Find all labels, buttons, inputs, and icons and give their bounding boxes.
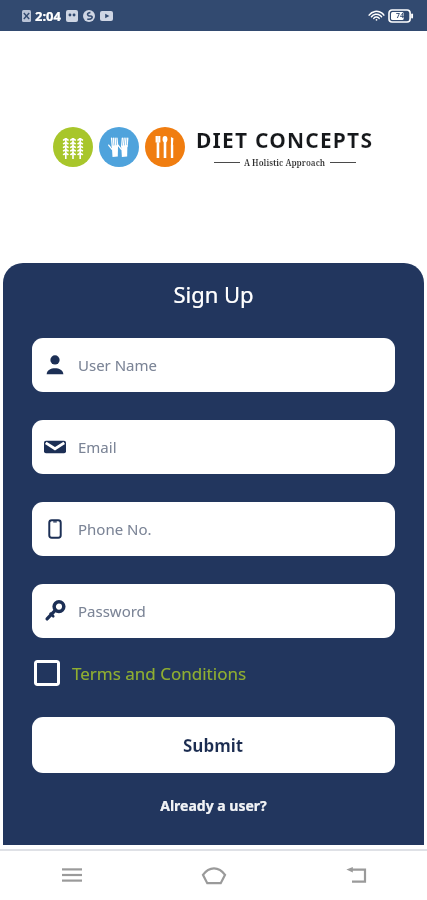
staticText: Submit [183,734,244,757]
button[interactable]: Submit [32,717,395,773]
button[interactable]: Phone No. [32,502,395,556]
staticText: User Name [78,355,158,375]
staticText: Terms and Conditions [72,662,247,685]
staticText: Sign Up [3,279,424,309]
button[interactable]: Back [285,850,427,900]
staticText: 74 [396,11,405,21]
staticText: Email [78,437,117,457]
staticText: Phone No. [78,519,152,539]
staticText: DIET CONCEPTS [196,126,374,155]
button[interactable]: User Name [32,338,395,392]
button[interactable]: Already a user? [3,796,424,815]
button[interactable]: Home [143,850,285,900]
button[interactable]: Email [32,420,395,474]
button[interactable]: Terms and Conditions [32,656,249,690]
staticText: A Holistic Approach [244,157,326,168]
staticText: 2:04 [35,7,61,25]
button[interactable]: Recent apps [0,850,143,900]
button[interactable]: Password [32,584,395,638]
staticText: Password [78,601,146,621]
